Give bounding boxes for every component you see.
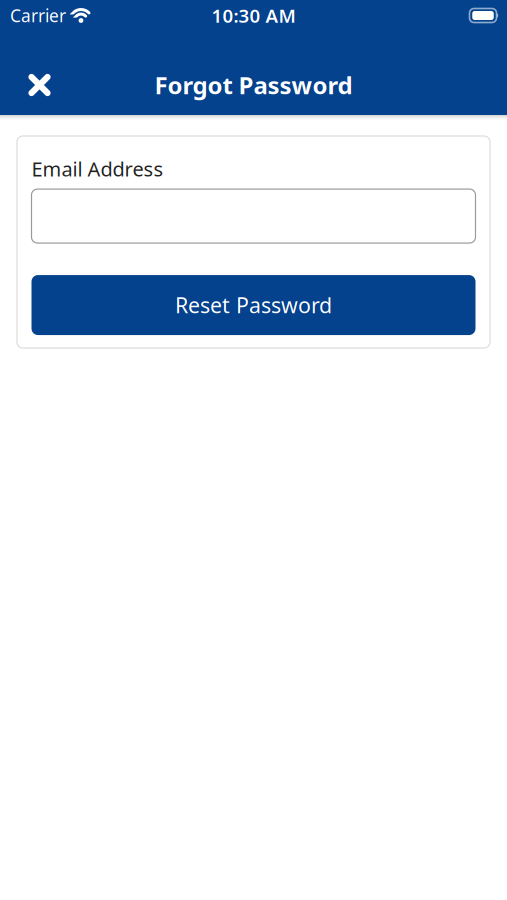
staticText: Forgot Password — [154, 69, 352, 101]
staticText: 10:30 AM — [211, 3, 295, 28]
staticText: Email Address — [31, 155, 163, 182]
staticText: Carrier — [10, 4, 66, 27]
button[interactable]: Reset Password — [31, 275, 475, 335]
staticText: Reset Password — [175, 291, 332, 319]
button[interactable]: Email Address — [31, 189, 475, 243]
button[interactable]: Close — [16, 63, 63, 106]
